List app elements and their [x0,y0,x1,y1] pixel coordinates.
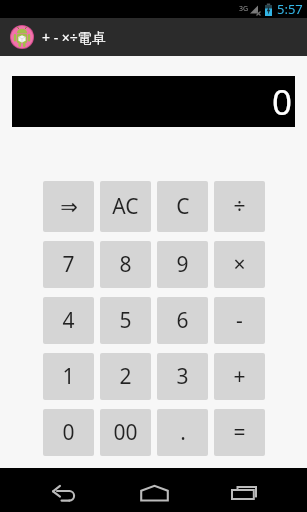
staticText: 8 [119,250,132,279]
staticText: 6 [176,306,189,335]
button[interactable]: × [214,241,265,288]
button[interactable]: ⇒ [43,181,94,232]
staticText: 7 [62,250,75,279]
button[interactable]: 3 [157,353,208,400]
staticText: 5:57 [277,0,303,18]
button[interactable]: 8 [100,241,151,288]
button[interactable]: AC [100,181,151,232]
staticText: 9 [176,250,189,279]
staticText: 2 [119,362,132,391]
staticText: × [233,250,246,279]
staticText: AC [112,192,139,221]
staticText: . [180,418,186,447]
staticText: ÷ [233,192,246,221]
staticText: = [233,418,246,447]
button[interactable]: 00 [100,409,151,456]
staticText: 1 [62,362,75,391]
button[interactable] [207,468,281,512]
staticText: 3G [239,4,249,14]
staticText: + - ×÷電卓 [42,28,106,47]
button[interactable]: = [214,409,265,456]
button[interactable]: 9 [157,241,208,288]
button[interactable]: 0 [43,409,94,456]
button[interactable]: C [157,181,208,232]
button[interactable]: + [214,353,265,400]
button[interactable]: 6 [157,297,208,344]
button[interactable]: 2 [100,353,151,400]
staticText: 0 [272,78,293,126]
button[interactable]: . [157,409,208,456]
button[interactable]: 1 [43,353,94,400]
staticText: C [176,192,190,221]
staticText: - [236,306,243,335]
staticText: 4 [62,306,75,335]
button[interactable] [117,468,191,512]
staticText: 00 [113,418,138,447]
button[interactable]: 7 [43,241,94,288]
staticText: + [233,362,246,391]
staticText: ⇒ [60,195,78,219]
button[interactable]: 5 [100,297,151,344]
staticText: 0 [62,418,75,447]
button[interactable]: ÷ [214,181,265,232]
button[interactable] [27,468,101,512]
button[interactable]: 4 [43,297,94,344]
staticText: 5 [119,306,132,335]
button[interactable]: - [214,297,265,344]
staticText: 3 [176,362,189,391]
